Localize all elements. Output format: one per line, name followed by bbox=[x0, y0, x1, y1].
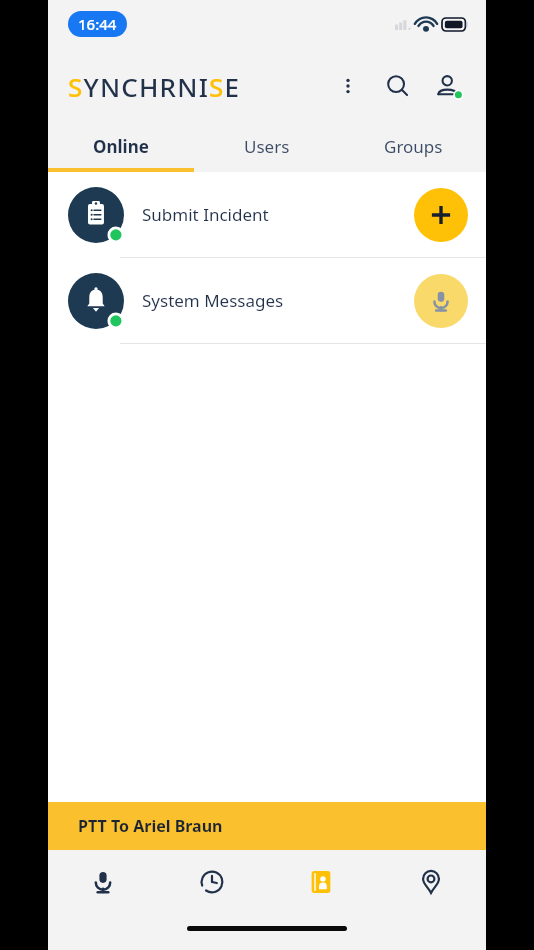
button[interactable]: Location bbox=[376, 850, 486, 914]
button[interactable]: Profile bbox=[426, 64, 470, 108]
staticText: PTT To Ariel Braun bbox=[78, 815, 223, 837]
button[interactable]: Submit Incident bbox=[48, 172, 486, 257]
button[interactable]: More options bbox=[326, 64, 370, 108]
button[interactable]: System Messages bbox=[48, 258, 486, 343]
button[interactable]: Add bbox=[414, 188, 468, 242]
staticText: Users bbox=[244, 135, 290, 158]
staticText: SYNCHRNISE bbox=[68, 69, 241, 104]
button[interactable]: Groups bbox=[340, 124, 486, 168]
button[interactable]: Users bbox=[194, 124, 340, 168]
button[interactable]: History bbox=[157, 850, 266, 914]
staticText: 16:44 bbox=[78, 14, 117, 34]
staticText: Online bbox=[93, 135, 149, 158]
button[interactable]: Push to talk bbox=[48, 850, 157, 914]
staticText: System Messages bbox=[142, 289, 284, 312]
staticText: Groups bbox=[384, 135, 443, 158]
button[interactable]: Online bbox=[48, 124, 194, 168]
button[interactable]: PTT To Ariel Braun bbox=[48, 802, 486, 850]
staticText: Submit Incident bbox=[142, 203, 269, 226]
button[interactable]: Push to talk bbox=[414, 274, 468, 328]
button[interactable]: Contacts bbox=[266, 850, 376, 914]
button[interactable]: Search bbox=[376, 64, 420, 108]
